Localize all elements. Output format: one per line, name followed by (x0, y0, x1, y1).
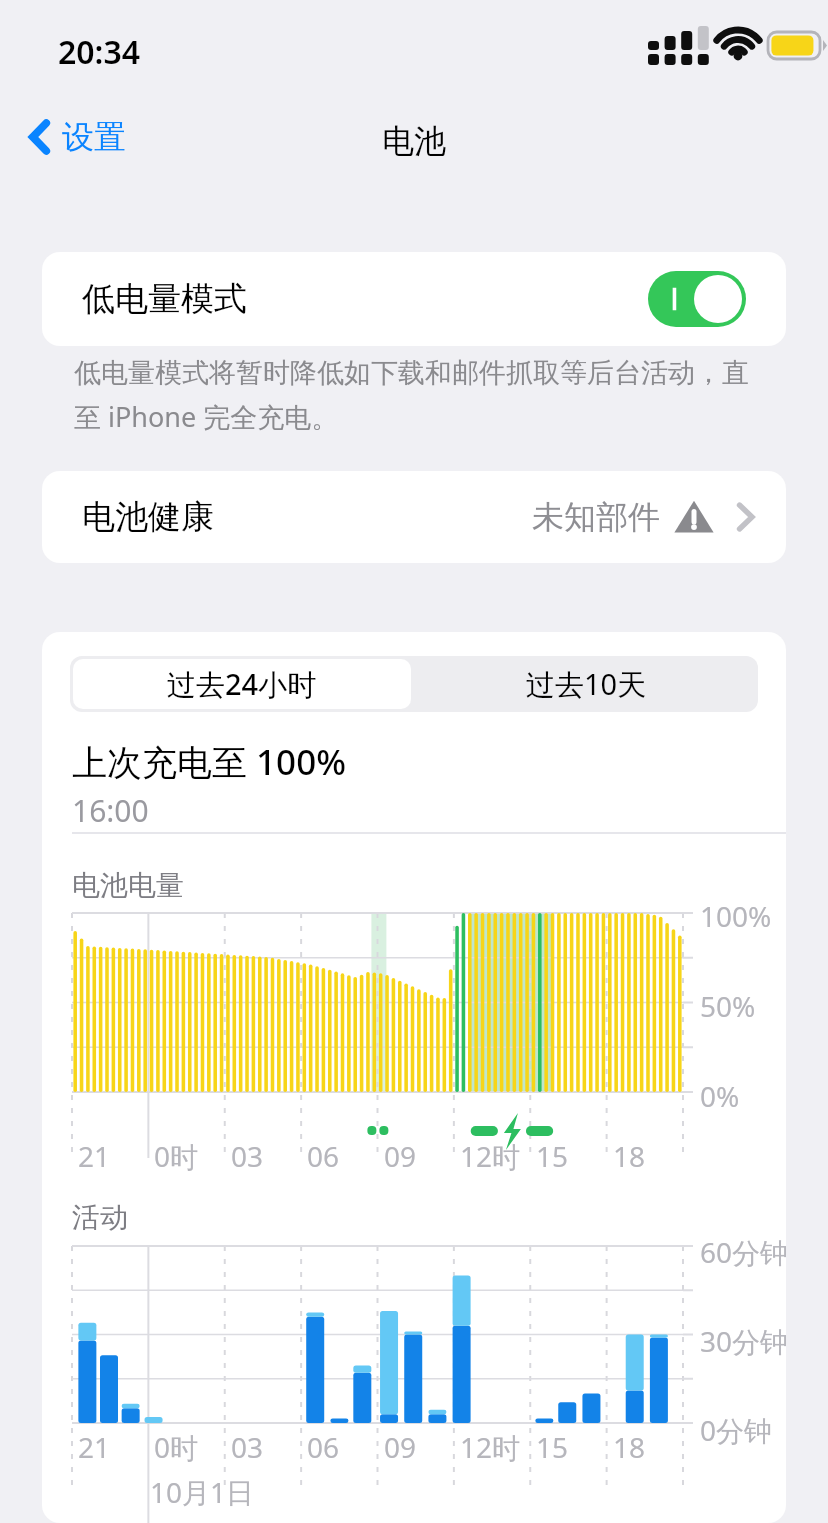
staticText: 过去10天 (526, 664, 647, 704)
staticText: 18 (613, 1428, 646, 1466)
staticText: 12时 (460, 1428, 521, 1466)
staticText: 0% (700, 1077, 740, 1115)
staticText: 20:34 (58, 30, 141, 74)
staticText: 15 (536, 1137, 569, 1175)
staticText: 16:00 (72, 790, 149, 831)
staticText: 03 (231, 1428, 264, 1466)
staticText: 15 (536, 1428, 569, 1466)
staticText: 电池健康 (82, 496, 214, 538)
staticText: 09 (384, 1137, 417, 1175)
staticText: 60分钟 (700, 1233, 786, 1271)
staticText: 电池电量 (72, 868, 184, 903)
staticText: 设置 (62, 117, 126, 157)
staticText: 电池 (0, 121, 828, 161)
staticText: 21 (78, 1428, 111, 1466)
staticText: 低电量模式 (82, 278, 247, 320)
staticText: 06 (307, 1428, 340, 1466)
staticText: 0时 (154, 1137, 199, 1175)
button[interactable]: 设置 (22, 110, 132, 164)
staticText: 过去24小时 (167, 664, 317, 704)
staticText: 21 (78, 1137, 111, 1175)
staticText: 100% (700, 897, 772, 935)
button[interactable]: 电池健康 (42, 471, 786, 563)
staticText: 30分钟 (700, 1322, 786, 1360)
staticText: 未知部件 (532, 497, 660, 537)
staticText: 活动 (72, 1200, 128, 1235)
button[interactable]: 低电量模式开关 (648, 271, 746, 327)
staticText: 0时 (154, 1428, 199, 1466)
button[interactable]: 低电量模式 (42, 252, 786, 346)
button[interactable]: 过去24小时 (73, 659, 411, 709)
staticText: 09 (384, 1428, 417, 1466)
staticText: 12时 (460, 1137, 521, 1175)
staticText: 0分钟 (700, 1411, 773, 1449)
staticText: 03 (231, 1137, 264, 1175)
staticText: 50% (700, 987, 756, 1025)
staticText: 低电量模式将暂时降低如下载和邮件抓取等后台活动，直至 iPhone 完全充电。 (74, 356, 756, 435)
button[interactable]: 过去10天 (414, 656, 758, 712)
staticText: 上次充电至 100% (72, 738, 346, 786)
staticText: 06 (307, 1137, 340, 1175)
staticText: 18 (613, 1137, 646, 1175)
staticText: 10月1日 (150, 1473, 255, 1511)
